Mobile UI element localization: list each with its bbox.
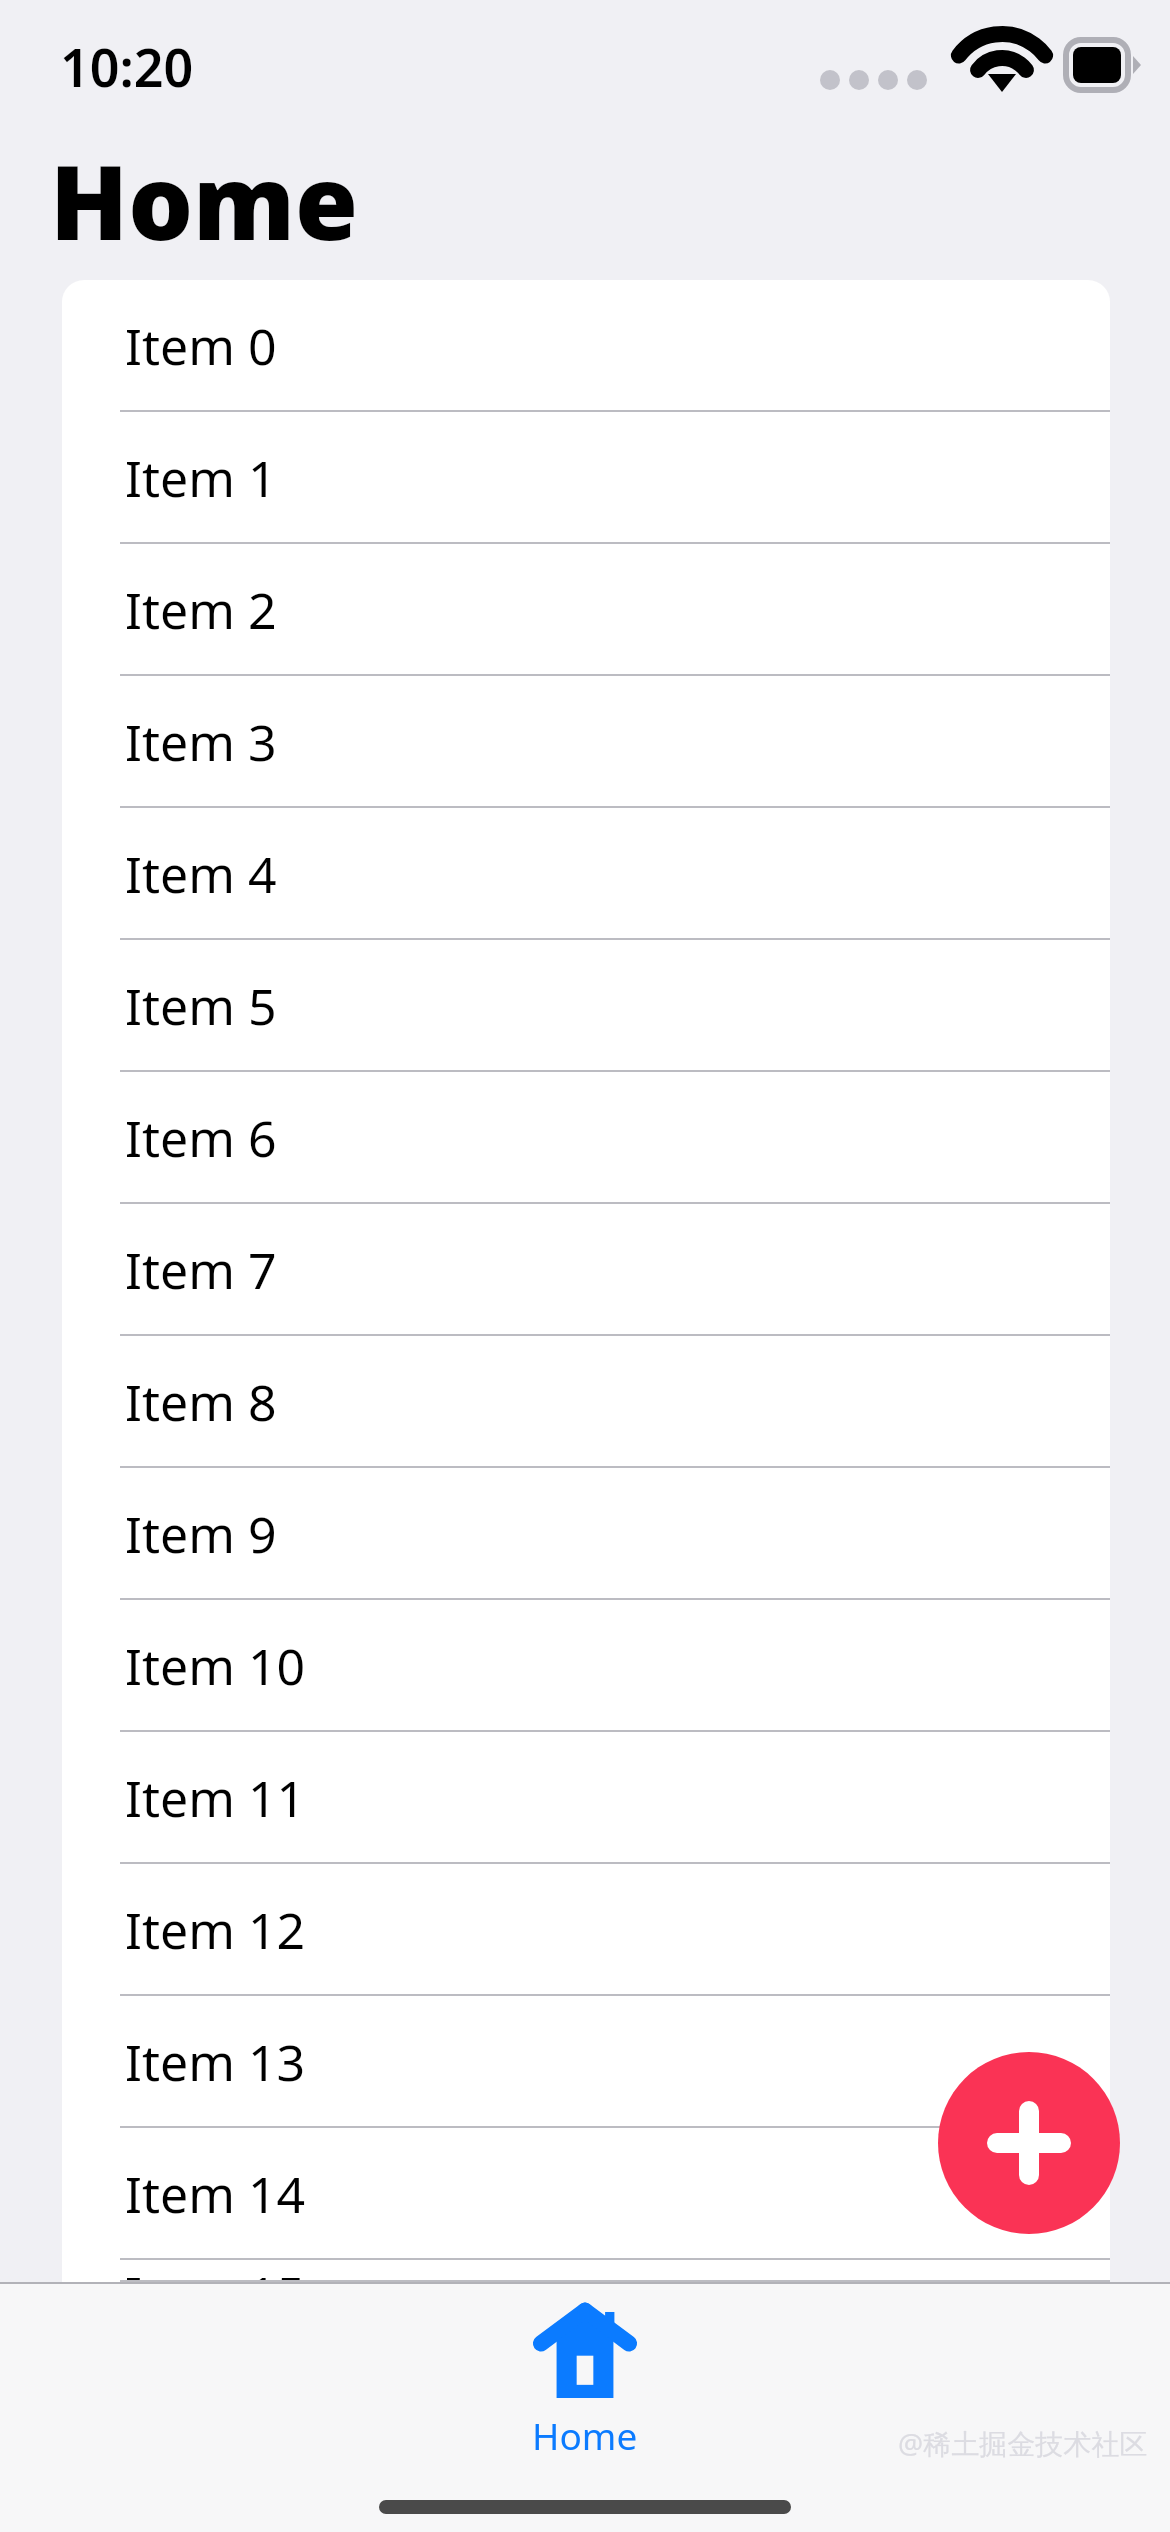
staticText: Home xyxy=(532,2410,638,2460)
staticText: Item 13 xyxy=(125,2028,306,2096)
button[interactable]: Item 11 xyxy=(62,1732,1110,1864)
button[interactable]: Item 6 xyxy=(62,1072,1110,1204)
staticText: Item 6 xyxy=(125,1104,277,1172)
staticText: 10:20 xyxy=(60,31,194,102)
staticText: Item 7 xyxy=(125,1236,277,1304)
staticText: Item 5 xyxy=(125,972,277,1040)
button[interactable]: Item 5 xyxy=(62,940,1110,1072)
staticText: Home xyxy=(50,131,359,270)
button[interactable]: Item 15 xyxy=(62,2260,1110,2282)
button[interactable]: Item 12 xyxy=(62,1864,1110,1996)
staticText: @稀土掘金技术社区 xyxy=(898,2424,1148,2462)
staticText: Item 10 xyxy=(125,1632,306,1700)
button[interactable]: Home xyxy=(532,2304,638,2460)
button[interactable]: Item 7 xyxy=(62,1204,1110,1336)
staticText: Item 0 xyxy=(125,312,277,380)
button[interactable]: Add xyxy=(938,2052,1120,2234)
staticText: Item 1 xyxy=(125,444,277,512)
button[interactable]: Item 4 xyxy=(62,808,1110,940)
staticText: Item 2 xyxy=(125,576,277,644)
staticText: Item 14 xyxy=(125,2160,306,2228)
button[interactable]: Item 14 xyxy=(62,2128,1110,2260)
button[interactable]: Item 2 xyxy=(62,544,1110,676)
button[interactable]: Item 0 xyxy=(62,280,1110,412)
staticText: Item 3 xyxy=(125,708,277,776)
button[interactable]: Item 13 xyxy=(62,1996,1110,2128)
staticText: Item 8 xyxy=(125,1368,277,1436)
button[interactable]: Item 10 xyxy=(62,1600,1110,1732)
button[interactable]: Item 3 xyxy=(62,676,1110,808)
staticText: Item 15 xyxy=(125,2260,306,2282)
staticText: Item 4 xyxy=(125,840,277,908)
staticText: Item 12 xyxy=(125,1896,306,1964)
button[interactable]: Item 1 xyxy=(62,412,1110,544)
button[interactable]: Item 8 xyxy=(62,1336,1110,1468)
staticText: Item 11 xyxy=(125,1764,306,1832)
button[interactable]: Item 9 xyxy=(62,1468,1110,1600)
staticText: Item 9 xyxy=(125,1500,277,1568)
